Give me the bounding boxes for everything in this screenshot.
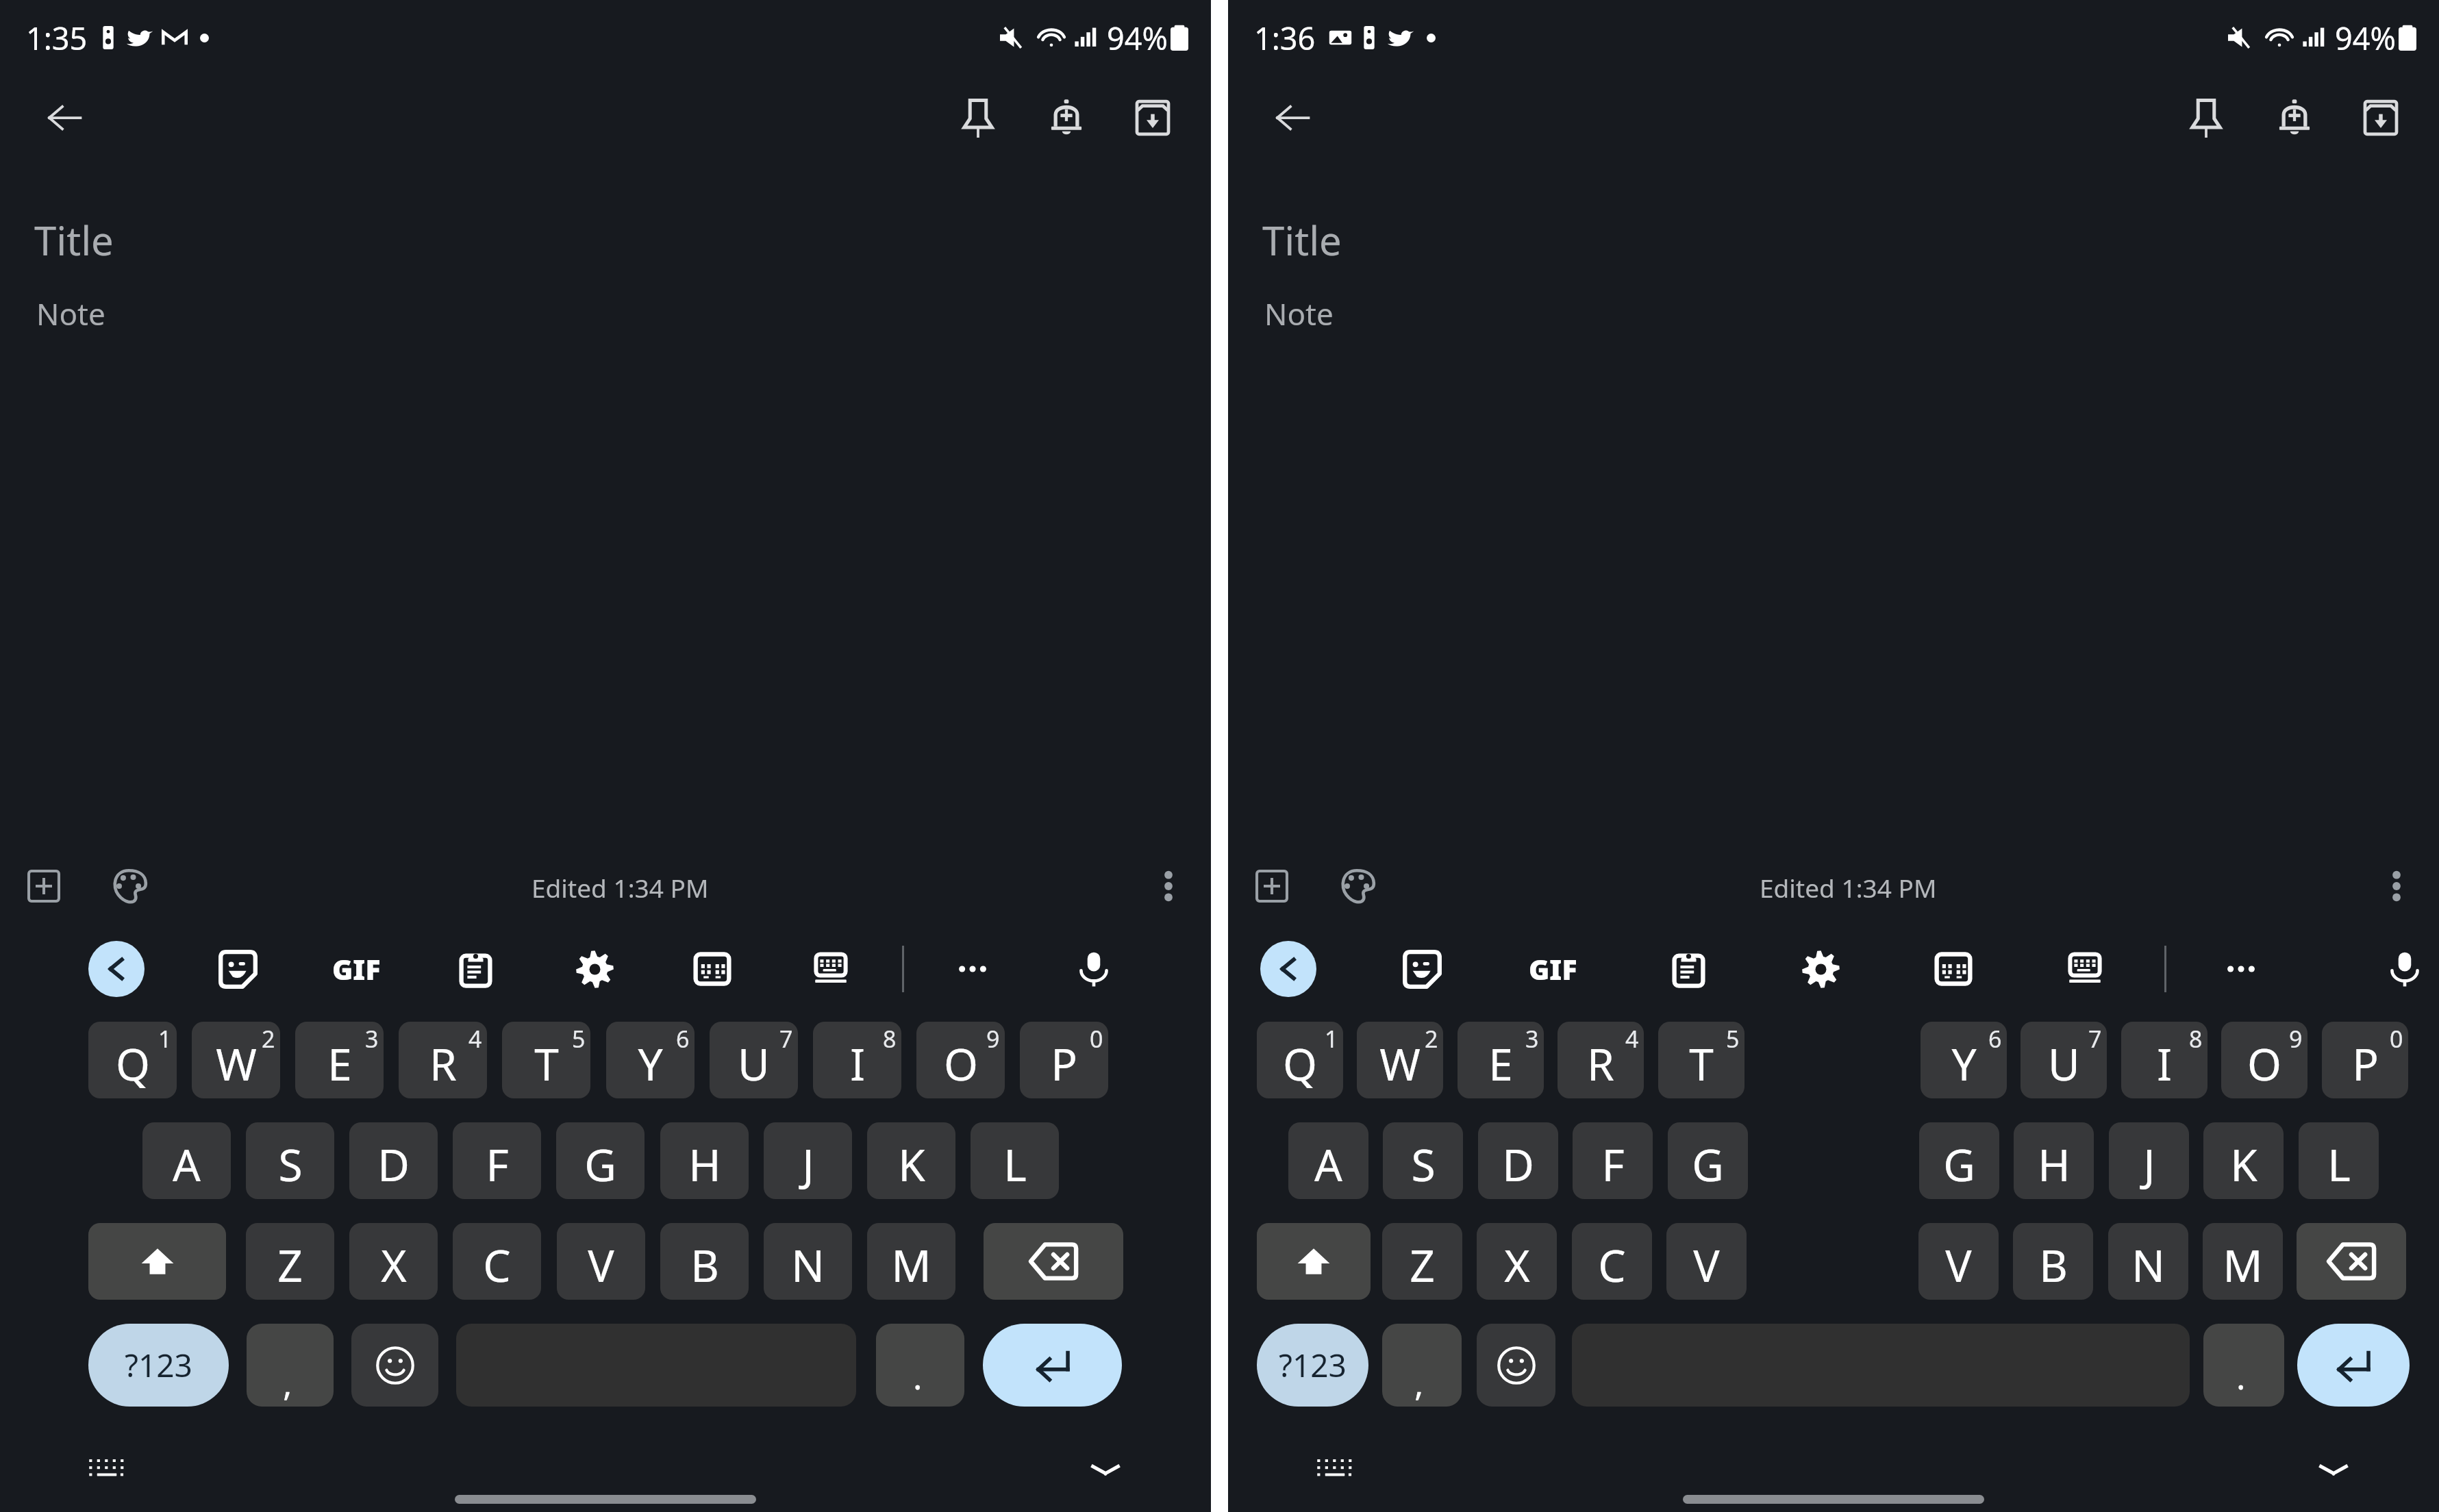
button[interactable]: V (1666, 1223, 1747, 1300)
button[interactable]: Settings (564, 939, 625, 999)
button[interactable]: Pin note (2168, 79, 2244, 156)
button[interactable]: R (1558, 1022, 1644, 1098)
button[interactable]: Add (1234, 848, 1310, 924)
button[interactable]: O (916, 1022, 1005, 1098)
button[interactable]: G (1668, 1122, 1748, 1199)
button[interactable]: One-handed mode (682, 939, 742, 999)
button[interactable]: W (1357, 1022, 1443, 1098)
button[interactable]: More (2211, 939, 2271, 999)
button[interactable]: M (867, 1223, 955, 1300)
button[interactable]: Symbols (88, 1324, 229, 1407)
button[interactable]: Clipboard (1658, 939, 1718, 999)
button[interactable]: L (971, 1122, 1059, 1199)
button[interactable]: J (764, 1122, 852, 1199)
button[interactable]: X (349, 1223, 438, 1300)
button[interactable]: T (1658, 1022, 1744, 1098)
button[interactable]: Floating keyboard (801, 939, 861, 999)
button[interactable]: M (2203, 1223, 2283, 1300)
button[interactable]: R (399, 1022, 487, 1098)
button[interactable]: Q (88, 1022, 177, 1098)
button[interactable]: Symbols (1257, 1324, 1368, 1407)
button[interactable]: A (142, 1122, 231, 1199)
button[interactable]: More options (1130, 848, 1207, 924)
button[interactable]: Floating keyboard (2055, 939, 2115, 999)
button[interactable]: Pin note (940, 79, 1016, 156)
button[interactable]: S (1383, 1122, 1463, 1199)
button[interactable]: Back (26, 79, 103, 156)
button[interactable]: G (1919, 1122, 1999, 1199)
button[interactable]: P (2322, 1022, 2408, 1098)
button[interactable]: Q (1257, 1022, 1343, 1098)
button[interactable]: Back (1254, 79, 1331, 156)
button[interactable]: K (867, 1122, 955, 1199)
button[interactable]: L (2299, 1122, 2379, 1199)
button[interactable]: Emoji (351, 1324, 438, 1407)
button[interactable]: J (2109, 1122, 2189, 1199)
button[interactable]: D (1478, 1122, 1558, 1199)
button[interactable]: Archive (1114, 79, 1191, 156)
button[interactable]: Reminder (2256, 79, 2333, 156)
button[interactable]: I (813, 1022, 901, 1098)
button[interactable]: T (502, 1022, 590, 1098)
button[interactable]: More (942, 939, 1003, 999)
button[interactable]: E (1458, 1022, 1544, 1098)
button[interactable]: U (710, 1022, 798, 1098)
button[interactable]: H (660, 1122, 749, 1199)
button[interactable]: Voice input (2375, 939, 2435, 999)
button[interactable]: N (2108, 1223, 2188, 1300)
button[interactable]: Voice input (1064, 939, 1124, 999)
button[interactable]: GIF (1523, 939, 1583, 999)
button[interactable]: P (1020, 1022, 1108, 1098)
button[interactable]: V (1918, 1223, 1999, 1300)
button[interactable]: W (192, 1022, 280, 1098)
button[interactable]: H (2014, 1122, 2094, 1199)
button[interactable]: I (2121, 1022, 2207, 1098)
button[interactable]: Back to keyboard (88, 941, 145, 997)
button[interactable]: Z (246, 1223, 334, 1300)
button[interactable]: Shift (1257, 1223, 1371, 1300)
button[interactable]: C (453, 1223, 541, 1300)
button[interactable]: Z (1382, 1223, 1462, 1300)
button[interactable]: Archive (2342, 79, 2419, 156)
button[interactable]: D (349, 1122, 438, 1199)
button[interactable]: Clipboard (445, 939, 505, 999)
button[interactable]: Enter (983, 1324, 1122, 1407)
button[interactable]: Stickers (1392, 939, 1452, 999)
button[interactable]: E (295, 1022, 384, 1098)
button[interactable]: Reminder (1028, 79, 1105, 156)
button[interactable]: Back to keyboard (1260, 941, 1316, 997)
button[interactable]: Y (1921, 1022, 2007, 1098)
button[interactable]: Stickers (208, 939, 268, 999)
button[interactable]: K (2203, 1122, 2284, 1199)
button[interactable]: Add (5, 848, 82, 924)
button[interactable]: . (2203, 1324, 2284, 1407)
button[interactable]: . (876, 1324, 964, 1407)
button[interactable]: Change colour (1318, 848, 1395, 924)
button[interactable]: Emoji (1477, 1324, 1555, 1407)
button[interactable]: V (557, 1223, 645, 1300)
button[interactable]: Change colour (90, 848, 167, 924)
button[interactable]: G (556, 1122, 645, 1199)
button[interactable]: Keyboard layout (1305, 1438, 1365, 1498)
button[interactable]: Hide keyboard (2303, 1439, 2364, 1500)
button[interactable]: , (247, 1324, 334, 1407)
button[interactable]: U (2021, 1022, 2107, 1098)
button[interactable]: Hide keyboard (1075, 1439, 1136, 1500)
button[interactable]: B (2013, 1223, 2093, 1300)
button[interactable]: Enter (2297, 1324, 2410, 1407)
button[interactable]: C (1572, 1223, 1652, 1300)
button[interactable]: GIF (326, 939, 386, 999)
button[interactable]: Keyboard layout (77, 1438, 137, 1498)
button[interactable]: F (1573, 1122, 1653, 1199)
button[interactable]: X (1477, 1223, 1557, 1300)
button[interactable]: S (246, 1122, 334, 1199)
button[interactable]: O (2221, 1022, 2307, 1098)
button[interactable]: A (1288, 1122, 1368, 1199)
button[interactable]: , (1382, 1324, 1462, 1407)
button[interactable]: Backspace (2297, 1223, 2406, 1300)
button[interactable]: Settings (1790, 939, 1851, 999)
button[interactable]: More options (2358, 848, 2435, 924)
button[interactable]: Y (606, 1022, 695, 1098)
